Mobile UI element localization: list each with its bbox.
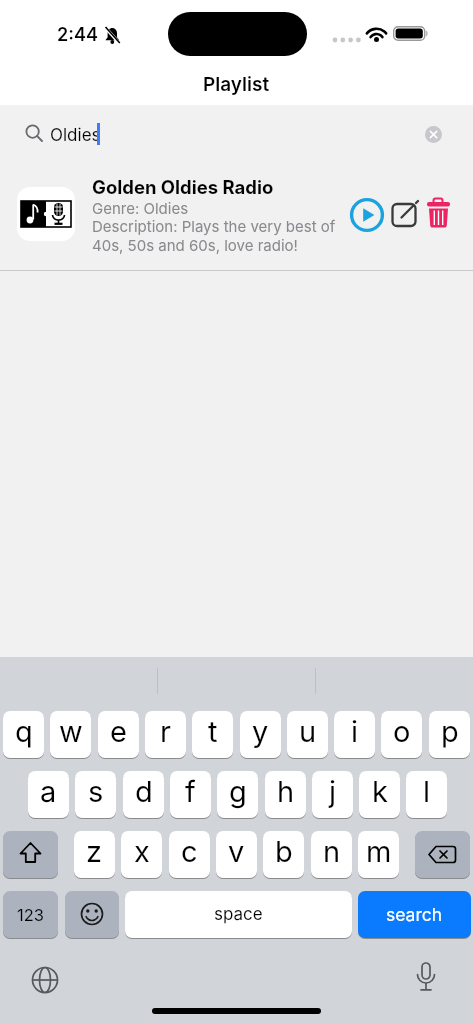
staticText: q: [15, 714, 33, 749]
button[interactable]: i: [334, 711, 375, 758]
button[interactable]: [425, 197, 453, 229]
button[interactable]: b: [263, 831, 304, 878]
button[interactable]: r: [145, 711, 186, 758]
staticText: w: [59, 714, 83, 749]
button[interactable]: k: [359, 771, 400, 818]
staticText: f: [185, 774, 196, 809]
button[interactable]: [0, 106, 473, 164]
staticText: t: [208, 714, 218, 749]
button[interactable]: e: [98, 711, 139, 758]
staticText: p: [441, 714, 459, 749]
staticText: r: [160, 714, 171, 749]
button[interactable]: [3, 831, 58, 878]
staticText: j: [329, 774, 337, 809]
staticText: search: [386, 904, 443, 925]
button[interactable]: y: [240, 711, 281, 758]
button[interactable]: a: [28, 771, 69, 818]
button[interactable]: h: [265, 771, 306, 818]
button[interactable]: space: [125, 891, 352, 938]
staticText: v: [228, 834, 245, 869]
staticText: h: [277, 774, 295, 809]
button[interactable]: z: [74, 831, 115, 878]
button[interactable]: f: [170, 771, 211, 818]
button[interactable]: t: [192, 711, 233, 758]
button[interactable]: u: [287, 711, 328, 758]
staticText: Playlist: [203, 73, 270, 96]
button[interactable]: search: [358, 891, 471, 938]
staticText: k: [372, 774, 388, 809]
button[interactable]: w: [50, 711, 91, 758]
button[interactable]: m: [358, 831, 399, 878]
staticText: e: [110, 714, 127, 749]
button[interactable]: [349, 197, 385, 233]
staticText: m: [366, 834, 392, 869]
staticText: Golden Oldies Radio: [92, 176, 274, 198]
staticText: Oldies: [50, 125, 101, 146]
staticText: l: [423, 774, 431, 809]
staticText: 2:44: [57, 24, 98, 46]
staticText: b: [275, 834, 293, 869]
staticText: g: [229, 774, 247, 809]
button[interactable]: v: [216, 831, 257, 878]
button[interactable]: l: [406, 771, 447, 818]
button[interactable]: o: [381, 711, 422, 758]
button[interactable]: d: [123, 771, 164, 818]
staticText: o: [393, 714, 411, 749]
staticText: u: [299, 714, 317, 749]
button[interactable]: p: [429, 711, 470, 758]
button[interactable]: [425, 126, 442, 143]
staticText: 123: [17, 905, 44, 925]
button[interactable]: 123: [3, 891, 58, 938]
button[interactable]: [0, 170, 473, 270]
staticText: Genre: Oldies: [92, 199, 189, 217]
button[interactable]: [390, 198, 420, 228]
button[interactable]: s: [75, 771, 116, 818]
staticText: s: [88, 774, 104, 809]
button[interactable]: [415, 831, 470, 878]
button[interactable]: g: [217, 771, 258, 818]
staticText: d: [135, 774, 153, 809]
button[interactable]: n: [311, 831, 352, 878]
staticText: x: [134, 834, 150, 869]
staticText: z: [86, 834, 103, 869]
staticText: c: [181, 834, 198, 869]
staticText: i: [351, 714, 359, 749]
staticText: a: [40, 774, 57, 809]
staticText: n: [323, 834, 341, 869]
staticText: Description: Plays the very best of 40s,…: [92, 217, 336, 254]
button[interactable]: [65, 891, 119, 938]
button[interactable]: c: [169, 831, 210, 878]
button[interactable]: j: [312, 771, 353, 818]
button[interactable]: q: [3, 711, 44, 758]
button[interactable]: x: [121, 831, 162, 878]
staticText: y: [252, 714, 269, 749]
staticText: space: [214, 904, 263, 925]
